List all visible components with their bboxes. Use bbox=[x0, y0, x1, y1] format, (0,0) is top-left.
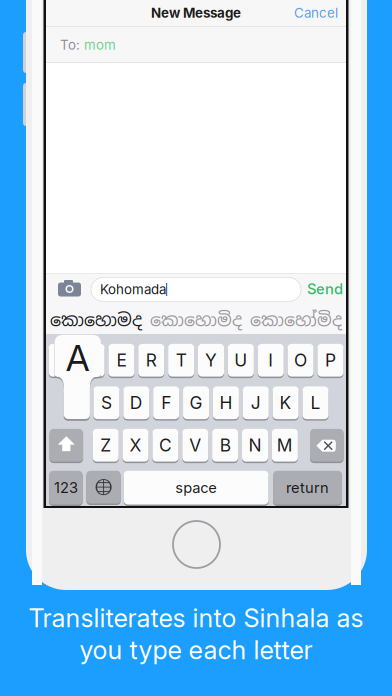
button[interactable]: J bbox=[243, 386, 269, 421]
button[interactable]: U bbox=[228, 344, 254, 378]
button[interactable]: Home bbox=[173, 521, 220, 568]
staticText: 123 bbox=[54, 479, 78, 496]
button[interactable]: Cancel bbox=[288, 0, 344, 27]
staticText: F bbox=[161, 392, 171, 413]
staticText: M bbox=[277, 435, 293, 456]
button[interactable]: H bbox=[213, 386, 239, 421]
button[interactable]: B bbox=[212, 429, 238, 463]
staticText: T bbox=[176, 350, 187, 371]
button[interactable]: A bbox=[64, 386, 90, 421]
button[interactable]: T bbox=[168, 344, 194, 378]
button[interactable]: V bbox=[182, 429, 208, 463]
staticText: Z bbox=[100, 435, 111, 456]
staticText: K bbox=[280, 392, 292, 413]
staticText: L bbox=[310, 392, 320, 413]
staticText: X bbox=[130, 435, 142, 456]
staticText: P bbox=[325, 350, 336, 371]
button[interactable]: E bbox=[108, 344, 134, 378]
staticText: return bbox=[286, 479, 329, 496]
button[interactable]: 123 bbox=[49, 471, 83, 506]
button[interactable]: Camera bbox=[57, 274, 91, 305]
button[interactable]: N bbox=[242, 429, 268, 463]
button[interactable]: M bbox=[272, 429, 298, 463]
staticText: To: bbox=[60, 37, 80, 53]
button[interactable]: F bbox=[153, 386, 179, 421]
staticText: O bbox=[294, 350, 307, 371]
staticText: U bbox=[234, 350, 247, 371]
staticText: Y bbox=[205, 350, 217, 371]
staticText: E bbox=[116, 350, 126, 371]
staticText: New Message bbox=[151, 5, 241, 21]
button[interactable]: Q bbox=[49, 344, 75, 378]
button[interactable]: K bbox=[273, 386, 299, 421]
button[interactable]: X bbox=[123, 429, 149, 463]
button[interactable]: I bbox=[258, 344, 284, 378]
button[interactable]: O bbox=[288, 344, 314, 378]
button[interactable]: කොහෝමිද bbox=[246, 305, 346, 335]
staticText: D bbox=[130, 392, 143, 413]
button[interactable]: return bbox=[273, 471, 342, 506]
button[interactable]: D bbox=[123, 386, 149, 421]
staticText: you type each letter bbox=[79, 635, 312, 665]
staticText: Send bbox=[307, 280, 343, 298]
staticText: V bbox=[189, 435, 201, 456]
staticText: කොහෝමිද bbox=[250, 309, 342, 331]
button[interactable]: L bbox=[302, 386, 328, 421]
button[interactable]: space bbox=[124, 471, 268, 506]
staticText: mom bbox=[84, 37, 116, 53]
staticText: C bbox=[159, 435, 172, 456]
button[interactable]: Z bbox=[93, 429, 119, 463]
button[interactable]: G bbox=[183, 386, 209, 421]
button[interactable]: R bbox=[138, 344, 164, 378]
staticText: W bbox=[83, 350, 100, 371]
button[interactable]: Delete bbox=[310, 429, 344, 463]
button[interactable]: C bbox=[152, 429, 178, 463]
staticText: Transliterates into Sinhala as bbox=[28, 603, 363, 633]
staticText: J bbox=[251, 392, 261, 413]
staticText: S bbox=[101, 392, 112, 413]
button[interactable]: Y bbox=[198, 344, 224, 378]
staticText: Cancel bbox=[294, 5, 338, 21]
button[interactable]: කොහොමිද bbox=[146, 305, 246, 335]
button[interactable]: කොහොමද bbox=[46, 305, 146, 335]
button[interactable]: Send bbox=[303, 274, 347, 305]
staticText: B bbox=[220, 435, 231, 456]
button[interactable]: Shift bbox=[49, 429, 83, 463]
staticText: R bbox=[146, 350, 157, 371]
button[interactable]: S bbox=[93, 386, 119, 421]
staticText: N bbox=[248, 435, 261, 456]
staticText: I bbox=[268, 350, 273, 371]
button[interactable]: Next keyboard bbox=[86, 471, 121, 505]
staticText: G bbox=[189, 392, 202, 413]
staticText: A bbox=[66, 336, 90, 380]
staticText: space bbox=[175, 479, 217, 496]
staticText: Kohomada bbox=[100, 281, 166, 297]
button[interactable]: P bbox=[317, 344, 343, 378]
button[interactable]: To: bbox=[46, 27, 346, 63]
button[interactable]: W bbox=[79, 344, 105, 378]
staticText: කොහොමිද bbox=[150, 309, 242, 331]
staticText: H bbox=[219, 392, 232, 413]
staticText: කොහොමද bbox=[50, 309, 142, 331]
staticText: Q bbox=[55, 350, 68, 371]
